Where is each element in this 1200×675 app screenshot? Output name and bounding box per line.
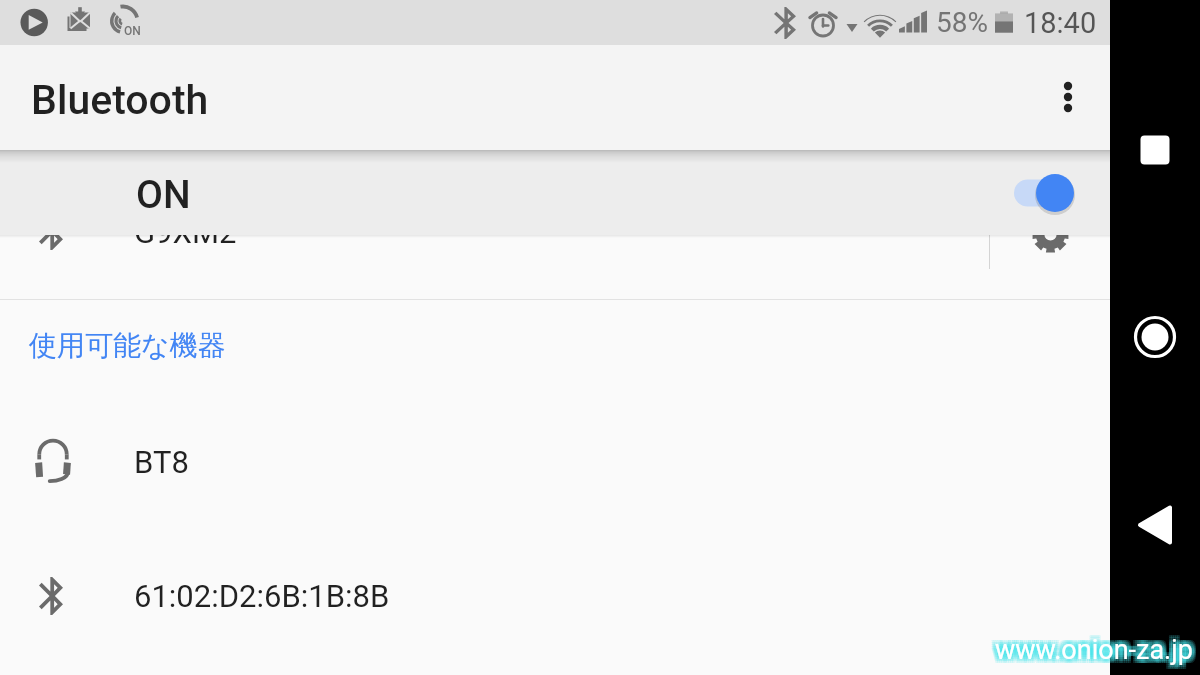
staticText: www.onion-za.jp: [999, 636, 1197, 668]
button[interactable]: Device settings: [1018, 200, 1082, 264]
staticText: Bluetooth: [31, 76, 209, 124]
button[interactable]: Back: [1124, 494, 1186, 556]
staticText: www.onion-za.jp: [997, 638, 1195, 670]
staticText: www.onion-za.jp: [993, 634, 1191, 666]
staticText: www.onion-za.jp: [999, 632, 1197, 664]
staticText: www.onion-za.jp: [991, 634, 1189, 666]
staticText: www.onion-za.jp: [993, 638, 1191, 670]
staticText: www.onion-za.jp: [997, 630, 1195, 662]
staticText: www.onion-za.jp: [995, 634, 1193, 666]
staticText: www.onion-za.jp: [995, 638, 1193, 670]
staticText: www.onion-za.jp: [999, 638, 1197, 670]
button[interactable]: G9XM2: [0, 150, 1110, 266]
staticText: www.onion-za.jp: [993, 630, 1191, 662]
staticText: www.onion-za.jp: [991, 638, 1189, 670]
staticText: www.onion-za.jp: [997, 636, 1195, 668]
button[interactable]: BT8: [0, 395, 1110, 529]
staticText: www.onion-za.jp: [995, 636, 1193, 668]
staticText: www.onion-za.jp: [995, 632, 1193, 664]
button[interactable]: 61:02:D2:6B:1B:8B: [0, 529, 1110, 663]
button[interactable]: Recent apps: [1124, 119, 1186, 181]
staticText: 18:40: [1024, 6, 1097, 40]
button[interactable]: More options: [1036, 65, 1100, 129]
staticText: 使用可能な機器: [29, 328, 226, 363]
staticText: www.onion-za.jp: [993, 632, 1191, 664]
staticText: www.onion-za.jp: [991, 636, 1189, 668]
staticText: www.onion-za.jp: [995, 630, 1193, 662]
staticText: www.onion-za.jp: [999, 634, 1197, 666]
staticText: www.onion-za.jp: [997, 634, 1195, 666]
staticText: www.onion-za.jp: [999, 630, 1197, 662]
button[interactable]: ON: [0, 150, 1110, 235]
button[interactable]: Bluetooth on: [1004, 164, 1084, 222]
staticText: 61:02:D2:6B:1B:8B: [134, 578, 390, 614]
staticText: www.onion-za.jp: [991, 632, 1189, 664]
staticText: BT8: [134, 444, 189, 480]
staticText: ON: [136, 172, 191, 218]
staticText: www.onion-za.jp: [991, 630, 1189, 662]
staticText: ON: [124, 24, 141, 38]
staticText: www.onion-za.jp: [997, 632, 1195, 664]
staticText: www.onion-za.jp: [993, 636, 1191, 668]
staticText: 58%: [936, 6, 988, 39]
button[interactable]: Home: [1124, 306, 1186, 368]
staticText: G9XM2: [134, 214, 237, 250]
